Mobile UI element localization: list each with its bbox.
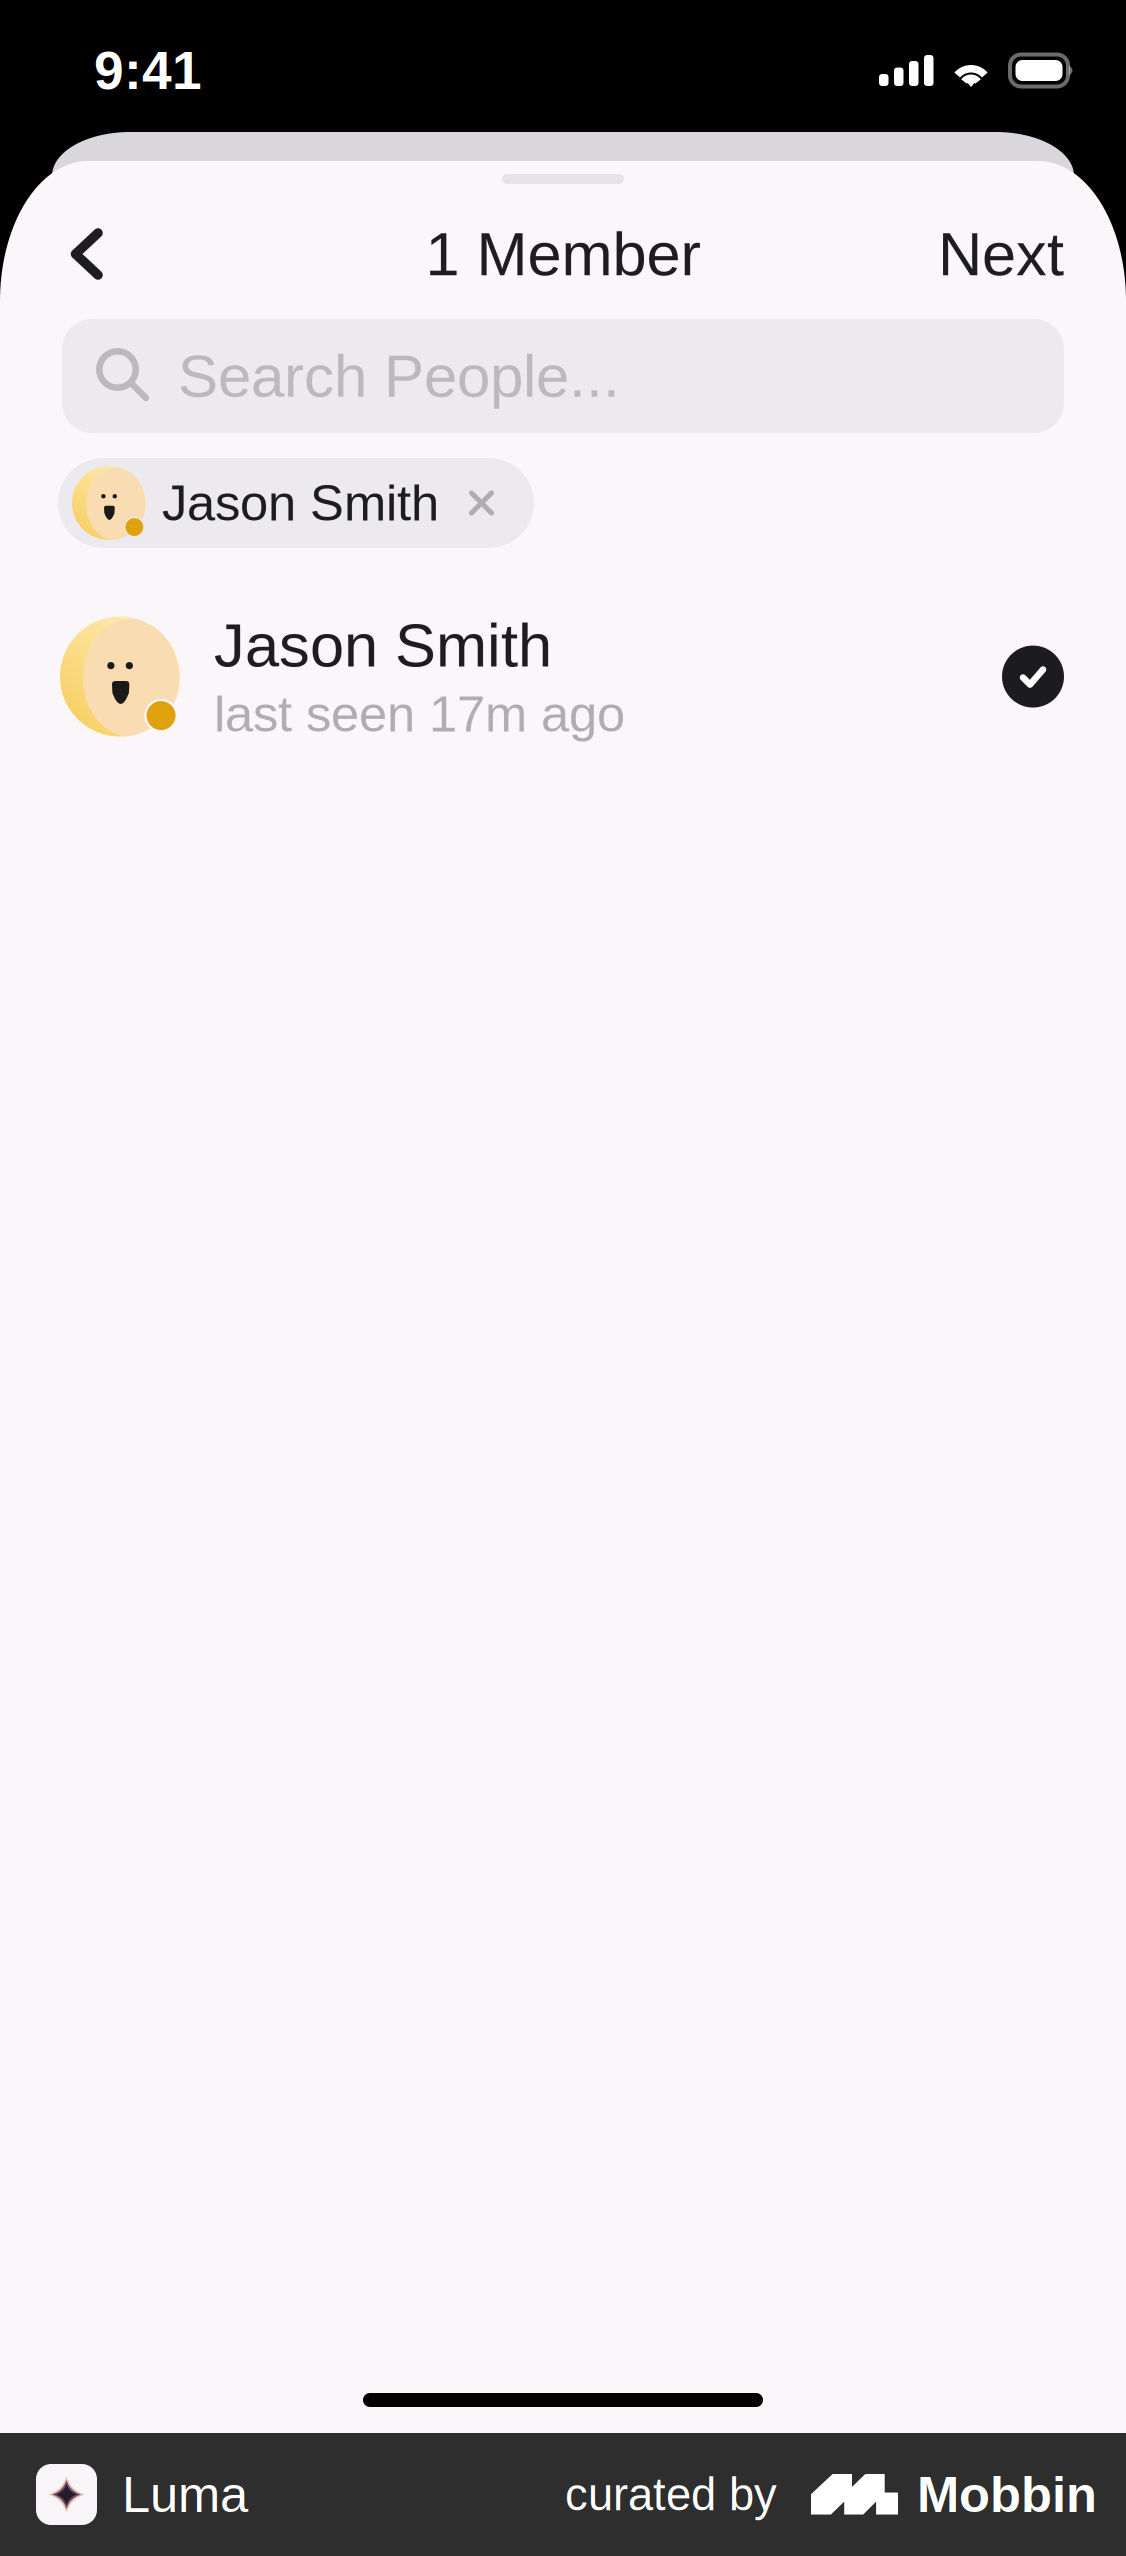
staticText: curated by [565, 2469, 777, 2520]
button[interactable]: Back [62, 205, 128, 303]
staticText: Next [938, 220, 1064, 288]
button[interactable]: Next [912, 196, 1064, 312]
staticText: Luma [122, 2466, 248, 2523]
button[interactable]: Jason Smith [0, 603, 1126, 750]
button[interactable]: Jason Smith [58, 458, 534, 548]
staticText: Jason Smith [214, 611, 552, 679]
staticText: 9:41 [94, 41, 202, 100]
staticText: last seen 17m ago [214, 685, 625, 742]
staticText: Mobbin [917, 2466, 1097, 2523]
staticText: 1 Member [425, 220, 700, 288]
staticText: Search People... [178, 342, 620, 409]
staticText: Jason Smith [162, 475, 439, 531]
button[interactable]: Search People... [62, 319, 1064, 433]
